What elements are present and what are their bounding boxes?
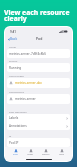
button[interactable]: Labels [7,114,70,122]
staticText: POD METADATA [9,110,27,113]
staticText: More [59,153,64,156]
staticText: IP [9,134,12,137]
button[interactable]: Annotations [7,122,70,130]
button[interactable]: Nodes [27,149,34,156]
staticText: CONTAINERS [9,74,24,77]
button[interactable]: Running [7,63,70,72]
staticText: Pod [36,36,43,41]
staticText: Running [9,66,22,70]
staticText: Annotations [9,124,27,128]
staticText: Deploys [42,153,50,156]
staticText: Labels [9,116,19,120]
button[interactable]: Pods [13,149,18,156]
staticText: CONDITIONS [9,90,25,93]
staticText: STATUS [9,59,18,62]
staticText: Back [10,37,18,41]
button[interactable]: metrics-server-7d9f4c8b5 [7,49,70,58]
button[interactable]: More [59,149,64,156]
staticText: Nodes [27,153,34,156]
staticText: NAME [9,45,16,48]
staticText: Pod IP [9,141,19,145]
staticText: Pods [13,153,18,156]
button[interactable]: Pod IP [7,138,70,147]
button[interactable]: metrics-server-abc [7,78,70,88]
button[interactable]: Back [7,36,19,42]
staticText: metrics-server [15,97,36,101]
staticText: View each resource clearly [4,8,70,23]
button[interactable]: Deploys [42,149,50,156]
staticText: metrics-server-7d9f4c8b5 [9,52,47,56]
staticText: 9:41 [10,30,16,34]
staticText: metrics-server-abc [15,81,43,85]
button[interactable]: metrics-server [7,94,70,104]
